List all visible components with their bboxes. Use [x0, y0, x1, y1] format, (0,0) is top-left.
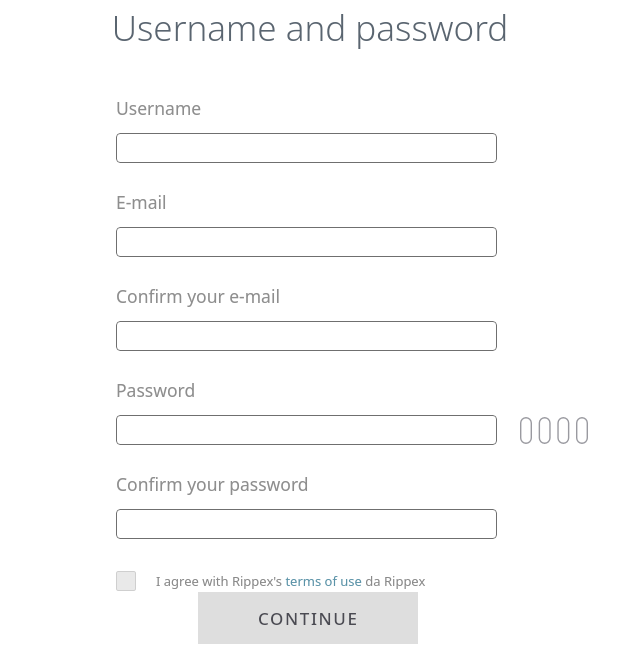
staticText: E-mail	[116, 190, 167, 214]
other: Password strength	[520, 417, 588, 444]
button[interactable]	[116, 227, 497, 257]
staticText: Username	[116, 96, 202, 120]
staticText: Password	[116, 378, 196, 402]
staticText: Confirm your e-mail	[116, 284, 280, 308]
staticText: I agree with Rippex's terms of use da Ri…	[156, 572, 426, 590]
staticText: CONTINUE	[258, 607, 359, 630]
button[interactable]	[116, 509, 497, 539]
button[interactable]	[116, 133, 497, 163]
staticText: Username and password	[0, 4, 620, 52]
button[interactable]	[116, 321, 497, 351]
button[interactable]: CONTINUE	[198, 592, 418, 644]
button[interactable]: I agree with Rippex's terms of use	[116, 571, 426, 591]
staticText: Confirm your password	[116, 472, 309, 496]
button[interactable]	[116, 415, 497, 445]
other: I agree with Rippex's terms of use	[116, 571, 136, 591]
